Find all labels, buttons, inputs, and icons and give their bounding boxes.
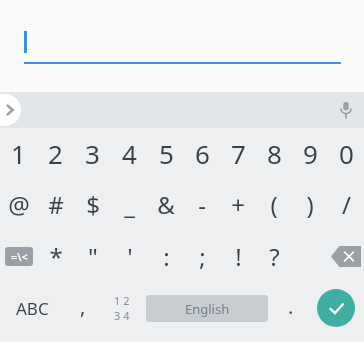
staticText: 5 <box>159 136 174 171</box>
button[interactable]: ; <box>184 230 220 282</box>
button[interactable]: Numbers <box>102 282 142 334</box>
staticText: 3 4 <box>114 308 130 323</box>
staticText: 3 <box>85 136 100 171</box>
staticText: 6 <box>195 136 210 171</box>
button[interactable]: 5 <box>148 128 184 178</box>
button[interactable]: Expand suggestions <box>0 94 21 126</box>
button[interactable]: . <box>272 282 310 334</box>
button[interactable]: 2 <box>37 128 74 178</box>
button[interactable]: English <box>146 295 268 322</box>
staticText: 0 <box>339 136 354 171</box>
button[interactable]: 9 <box>292 128 328 178</box>
staticText: ( <box>270 188 278 221</box>
staticText: # <box>48 188 64 221</box>
button[interactable]: 6 <box>184 128 220 178</box>
button[interactable]: Done <box>317 289 355 327</box>
staticText: 1 <box>11 136 26 171</box>
staticText: - <box>198 188 206 221</box>
button[interactable]: @ <box>0 178 37 230</box>
button[interactable]: 4 <box>111 128 148 178</box>
button[interactable]: 8 <box>256 128 292 178</box>
button[interactable]: 3 <box>74 128 111 178</box>
button[interactable]: / <box>328 178 364 230</box>
button[interactable]: 7 <box>220 128 256 178</box>
button[interactable]: =\< <box>0 230 37 282</box>
button[interactable]: * <box>37 230 74 282</box>
button[interactable]: ) <box>292 178 328 230</box>
button[interactable]: : <box>148 230 184 282</box>
staticText: 1 2 <box>114 293 130 308</box>
staticText: ABC <box>16 297 49 320</box>
staticText: English <box>185 300 230 318</box>
staticText: . <box>288 293 294 320</box>
button[interactable]: ABC <box>0 282 64 334</box>
staticText: ! <box>235 240 242 273</box>
staticText: ; <box>199 240 206 273</box>
button[interactable]: ' <box>111 230 148 282</box>
staticText: @ <box>8 188 30 221</box>
button[interactable]: 0 <box>328 128 364 178</box>
button[interactable]: ( <box>256 178 292 230</box>
staticText: , <box>80 293 86 320</box>
staticText: $ <box>86 188 100 221</box>
staticText: =\< <box>11 249 28 264</box>
staticText: : <box>163 240 170 273</box>
button[interactable]: Voice input <box>328 92 364 128</box>
staticText: & <box>157 188 175 221</box>
staticText: 4 <box>122 136 137 171</box>
staticText: ? <box>269 240 280 273</box>
staticText: _ <box>124 188 135 221</box>
staticText: ) <box>306 188 314 221</box>
staticText: ' <box>127 240 133 273</box>
button[interactable]: _ <box>111 178 148 230</box>
button[interactable]: , <box>64 282 102 334</box>
staticText: + <box>231 188 245 221</box>
button[interactable]: + <box>220 178 256 230</box>
button[interactable]: ! <box>220 230 256 282</box>
button[interactable]: Backspace <box>328 230 364 282</box>
staticText: * <box>49 240 63 273</box>
staticText: 7 <box>231 136 246 171</box>
staticText: 2 <box>48 136 63 171</box>
staticText: 9 <box>303 136 318 171</box>
staticText: " <box>88 240 98 273</box>
staticText: / <box>342 188 351 221</box>
button[interactable]: $ <box>74 178 111 230</box>
button[interactable]: ? <box>256 230 292 282</box>
button[interactable]: " <box>74 230 111 282</box>
button[interactable]: 1 <box>0 128 37 178</box>
staticText: 8 <box>267 136 282 171</box>
button[interactable]: # <box>37 178 74 230</box>
button[interactable]: - <box>184 178 220 230</box>
button[interactable]: & <box>148 178 184 230</box>
